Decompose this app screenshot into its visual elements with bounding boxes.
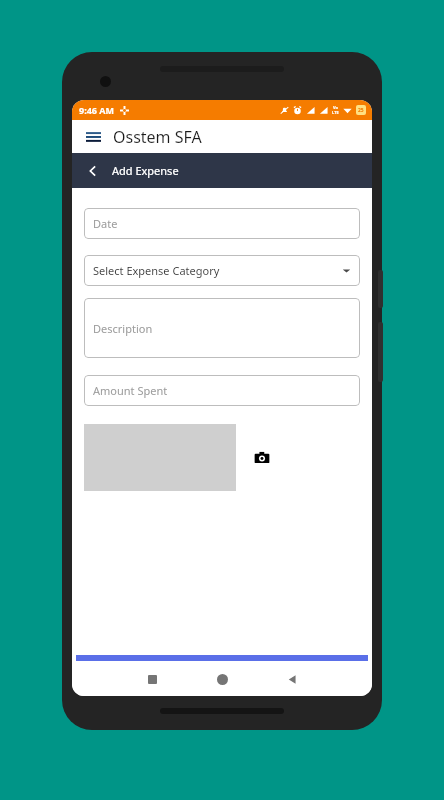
button[interactable]: Recent apps — [139, 666, 165, 692]
button[interactable]: Open navigation menu — [82, 126, 104, 148]
staticText: Select Expense Category — [93, 263, 220, 278]
staticText: Add Expense — [112, 163, 179, 178]
staticText: Date — [93, 216, 118, 231]
staticText: Amount Spent — [93, 383, 168, 398]
button[interactable]: Back — [72, 153, 372, 188]
staticText: Vo — [333, 105, 339, 110]
button[interactable]: Take photo — [250, 446, 274, 470]
button[interactable]: Home — [209, 666, 235, 692]
staticText: 9:46 AM — [79, 104, 115, 116]
other: Back — [84, 162, 102, 180]
staticText: Osstem SFA — [113, 126, 202, 148]
button[interactable]: Date — [84, 208, 360, 239]
button[interactable]: Description — [84, 298, 360, 358]
staticText: Description — [93, 321, 153, 336]
staticText: LTE — [332, 110, 339, 115]
staticText: 25 — [358, 107, 364, 114]
button[interactable]: Select Expense Category — [84, 255, 360, 286]
button[interactable]: Amount Spent — [84, 375, 360, 406]
button[interactable]: Back — [279, 666, 305, 692]
